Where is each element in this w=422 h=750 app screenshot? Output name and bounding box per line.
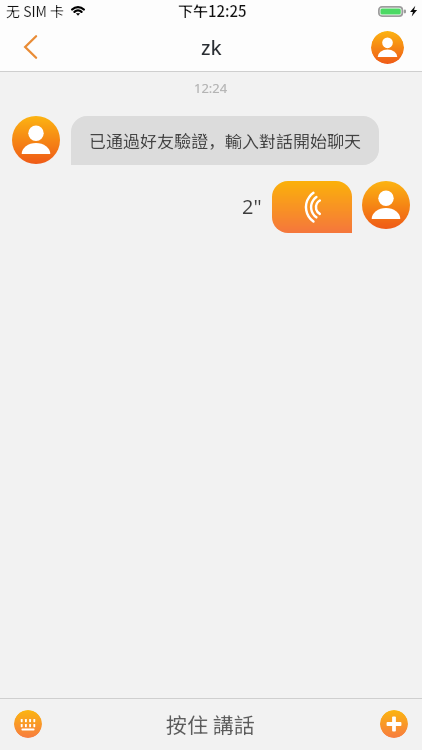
- button[interactable]: Back: [0, 22, 58, 72]
- staticText: 下午12:25: [178, 0, 247, 22]
- staticText: 12:24: [194, 79, 228, 97]
- staticText: 无 SIM 卡: [6, 1, 65, 21]
- button[interactable]: Play voice message: [272, 181, 352, 233]
- button[interactable]: Profile: [371, 31, 404, 64]
- button[interactable]: 已通過好友驗證，輸入對話開始聊天: [71, 116, 379, 165]
- staticText: 已通過好友驗證，輸入對話開始聊天: [89, 128, 361, 153]
- staticText: 2": [242, 193, 262, 220]
- button[interactable]: Add: [380, 710, 408, 738]
- button[interactable]: Keyboard: [14, 710, 42, 738]
- staticText: 按住 講話: [166, 709, 255, 739]
- staticText: zk: [201, 34, 222, 61]
